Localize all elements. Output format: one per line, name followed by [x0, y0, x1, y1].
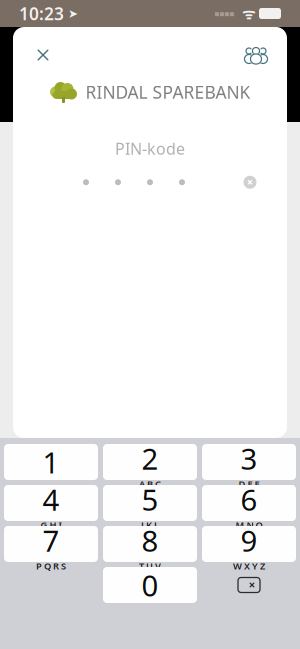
- staticText: PIN-kode: [115, 138, 185, 159]
- staticText: ▪▪▪▪: [214, 9, 234, 18]
- staticText: 1: [42, 442, 59, 481]
- staticText: 5: [141, 480, 158, 519]
- button[interactable]: Slett: [202, 567, 296, 603]
- staticText: M N O: [235, 519, 262, 531]
- staticText: 2: [141, 439, 158, 478]
- button[interactable]: 2: [103, 444, 197, 480]
- button[interactable]: Lukk: [25, 38, 61, 72]
- staticText: G H I: [40, 519, 61, 531]
- staticText: ➤: [64, 7, 78, 20]
- button[interactable]: 7: [4, 526, 98, 562]
- staticText: W X Y Z: [233, 560, 265, 572]
- staticText: P Q R S: [36, 560, 66, 572]
- staticText: 9: [240, 521, 257, 560]
- staticText: 4: [42, 480, 59, 519]
- button[interactable]: Tøm PIN-kode: [235, 167, 265, 197]
- staticText: T U V: [139, 560, 161, 572]
- staticText: D E F: [238, 478, 259, 490]
- button[interactable]: 5: [103, 485, 197, 521]
- button[interactable]: Bytt bruker: [237, 38, 275, 72]
- staticText: RINDAL SPAREBANK: [85, 80, 250, 103]
- button[interactable]: 0: [103, 567, 197, 603]
- staticText: 0: [141, 565, 158, 604]
- button[interactable]: 4: [4, 485, 98, 521]
- staticText: 8: [141, 521, 158, 560]
- staticText: J K L: [141, 519, 159, 531]
- button[interactable]: 9: [202, 526, 296, 562]
- staticText: 3: [240, 439, 257, 478]
- staticText: 10:23: [19, 2, 64, 25]
- button[interactable]: 6: [202, 485, 296, 521]
- staticText: 7: [42, 521, 59, 560]
- button[interactable]: 3: [202, 444, 296, 480]
- staticText: ᯤ: [234, 4, 259, 23]
- button[interactable]: 1: [4, 444, 98, 480]
- staticText: A B C: [139, 478, 161, 490]
- button[interactable]: 8: [103, 526, 197, 562]
- staticText: 6: [240, 480, 257, 519]
